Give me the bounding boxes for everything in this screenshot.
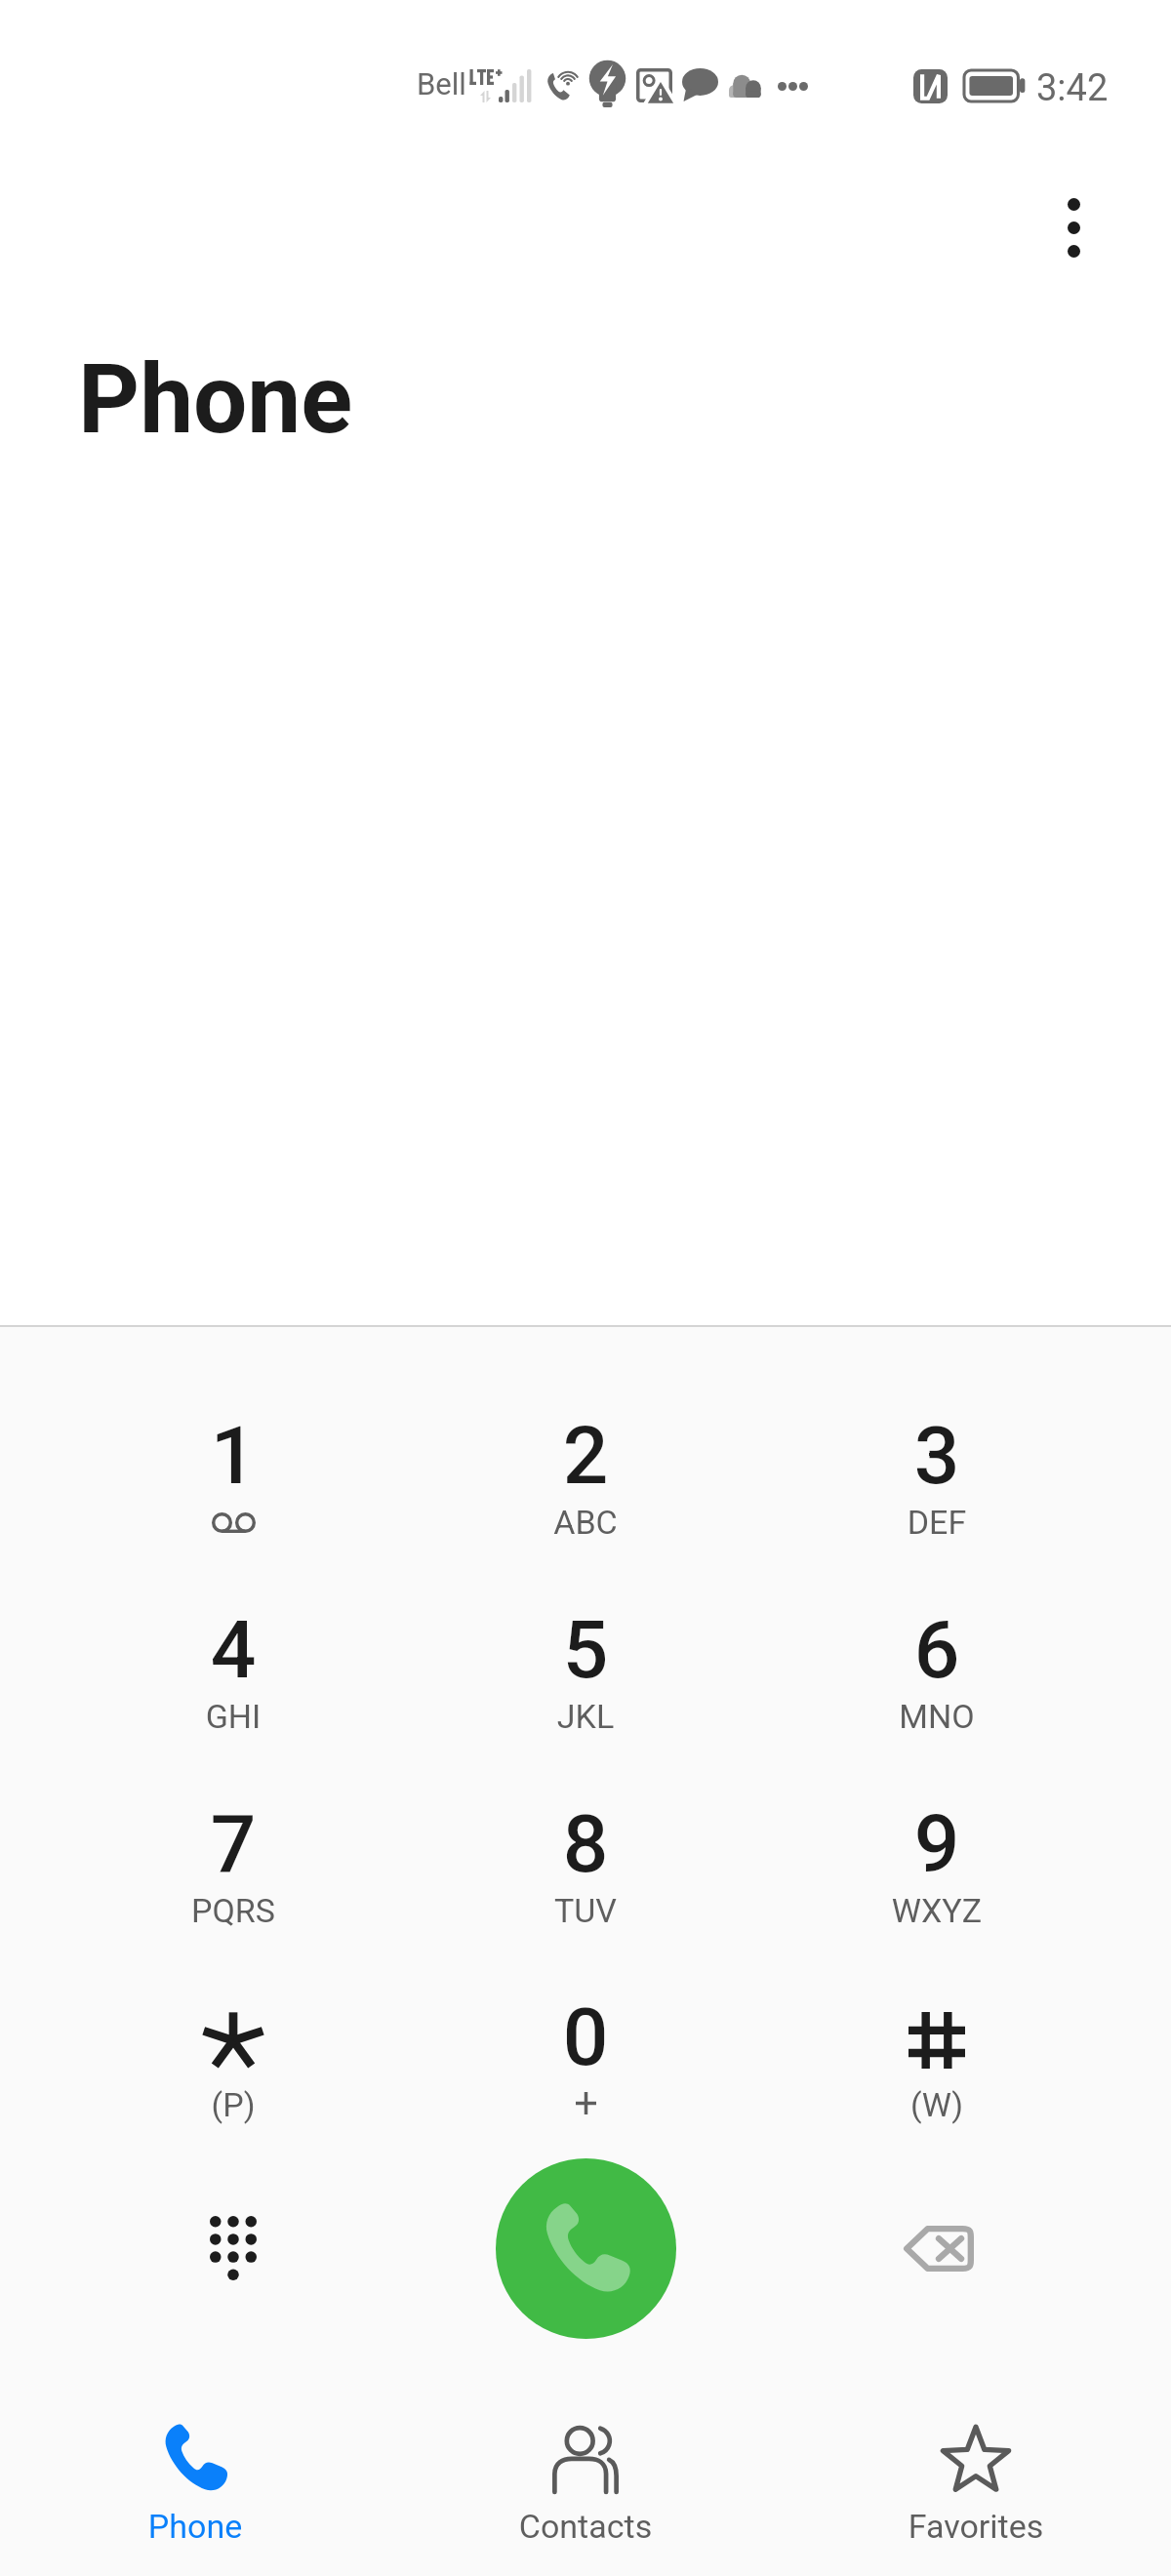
staticText: ABC [439, 1503, 732, 1542]
staticText: 4 [87, 1603, 380, 1697]
button[interactable]: 5 [439, 1579, 732, 1737]
button[interactable]: 6 [790, 1579, 1083, 1737]
button[interactable]: 1 [87, 1385, 380, 1543]
staticText: Favorites [781, 2507, 1171, 2546]
staticText: 0 [439, 1991, 732, 2084]
staticText: WXYZ [790, 1891, 1083, 1930]
button[interactable]: More options [1015, 169, 1132, 286]
staticText: 5 [439, 1603, 732, 1697]
staticText: 9 [790, 1797, 1083, 1891]
staticText: DEF [790, 1503, 1083, 1542]
staticText: 3:42 [1036, 66, 1109, 110]
button[interactable]: (P) [87, 1966, 380, 2124]
staticText: 3 [790, 1409, 1083, 1503]
staticText: 7 [87, 1797, 380, 1891]
staticText: Bell [417, 66, 466, 101]
staticText: 8 [439, 1797, 732, 1891]
staticText: Phone [78, 343, 353, 456]
button[interactable]: 9 [790, 1773, 1083, 1931]
button[interactable]: 4 [87, 1579, 380, 1737]
staticText: 1 [87, 1409, 380, 1503]
button[interactable]: Show keypad [155, 2170, 311, 2326]
staticText: GHI [87, 1697, 380, 1736]
button[interactable]: 8 [439, 1773, 732, 1931]
staticText: JKL [439, 1697, 732, 1736]
staticText: MNO [790, 1697, 1083, 1736]
button[interactable]: Phone [0, 2391, 390, 2576]
staticText: Contacts [390, 2507, 781, 2546]
button[interactable]: Contacts [390, 2391, 781, 2576]
button[interactable]: 2 [439, 1385, 732, 1543]
staticText: Phone [0, 2507, 390, 2546]
staticText: PQRS [87, 1891, 380, 1930]
button[interactable]: 7 [87, 1773, 380, 1931]
staticText: TUV [439, 1891, 732, 1930]
staticText: 2 [439, 1409, 732, 1503]
button[interactable]: (W) [790, 1966, 1083, 2124]
staticText: 6 [790, 1603, 1083, 1697]
staticText: (W) [790, 2085, 1083, 2124]
staticText: (P) [87, 2085, 380, 2124]
button[interactable]: Favorites [781, 2391, 1171, 2576]
button[interactable]: 3 [790, 1385, 1083, 1543]
button[interactable]: Call [496, 2158, 676, 2339]
button[interactable]: 0 [439, 1966, 732, 2124]
button[interactable]: Backspace [861, 2170, 1017, 2326]
